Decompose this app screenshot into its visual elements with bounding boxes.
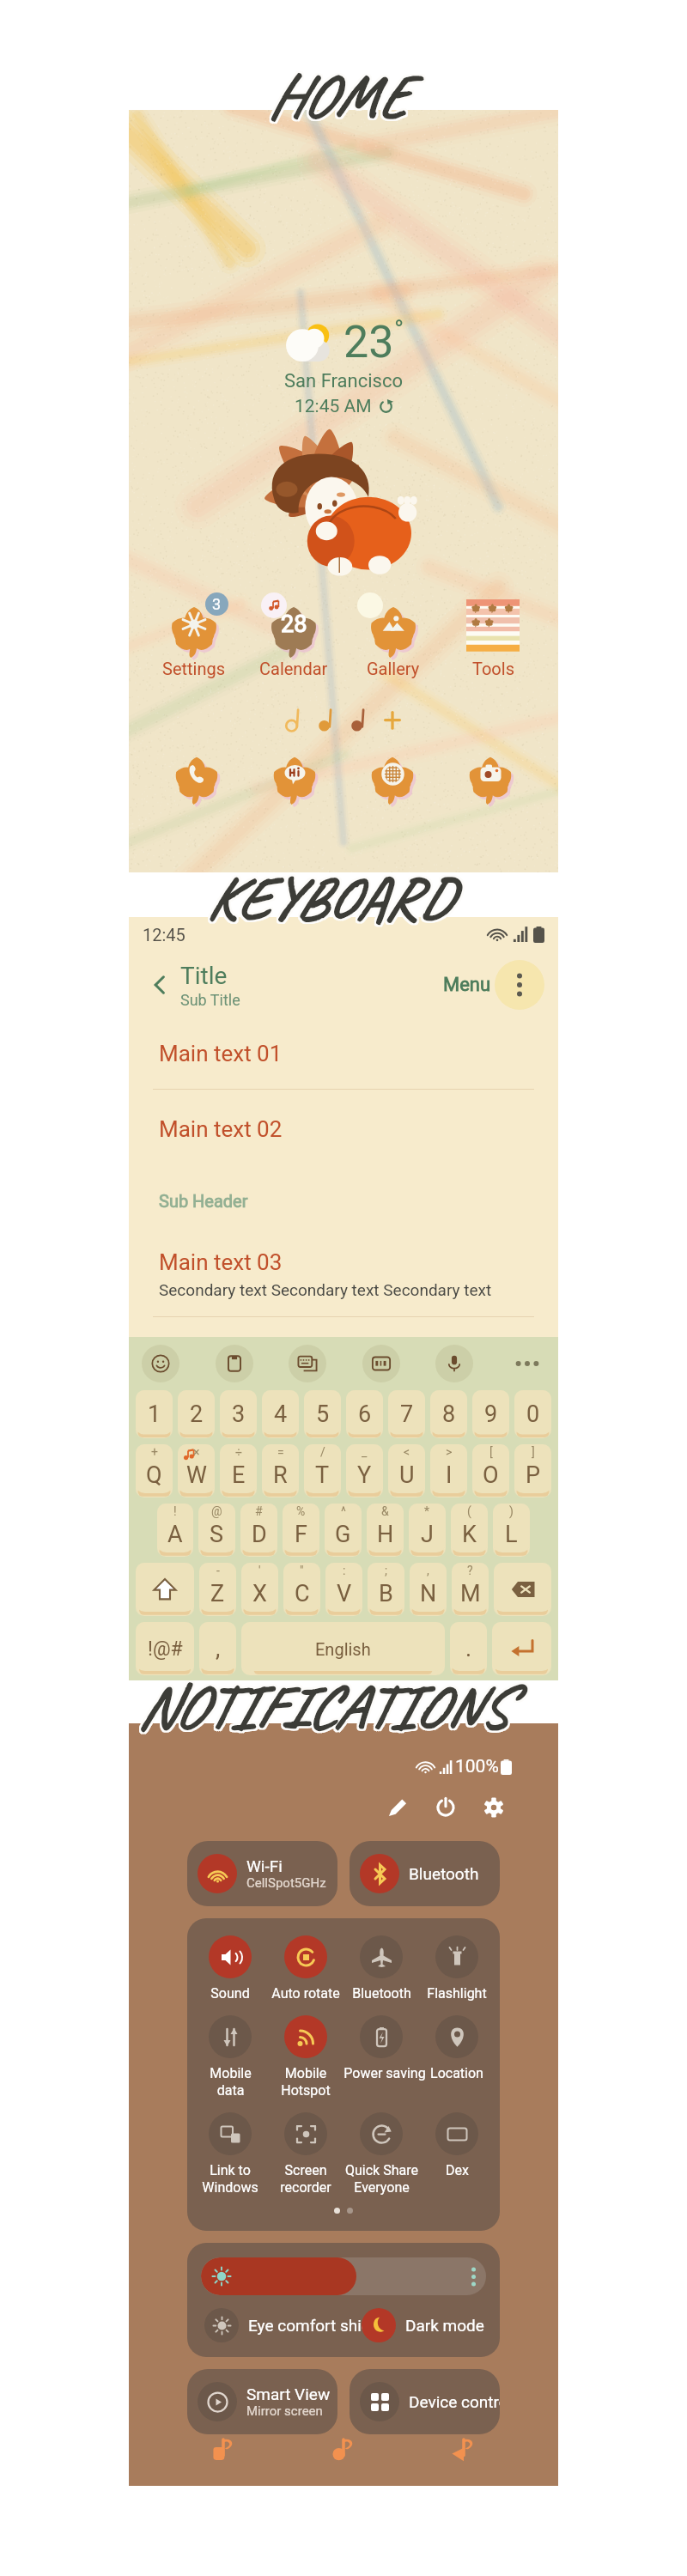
button[interactable]: 6 xyxy=(346,1390,383,1438)
button[interactable]: Recents xyxy=(198,2434,249,2464)
button[interactable]: . xyxy=(450,1622,487,1675)
button[interactable]: Main text 04 xyxy=(129,1317,558,1386)
button[interactable]: Main text 03 xyxy=(129,1232,558,1316)
button[interactable]: Browser xyxy=(357,747,428,811)
button[interactable]: V xyxy=(325,1563,362,1616)
button[interactable]: Bluetooth xyxy=(350,1841,500,1906)
button[interactable]: Smart View xyxy=(187,2369,337,2434)
button[interactable]: More options xyxy=(495,960,544,1010)
button[interactable]: Power xyxy=(431,1793,460,1822)
button[interactable]: 1 xyxy=(136,1390,173,1438)
button[interactable]: 3 xyxy=(153,592,235,678)
button[interactable]: Wi-Fi xyxy=(187,1841,337,1906)
button[interactable]: Home xyxy=(318,2434,369,2464)
button[interactable]: M xyxy=(452,1563,489,1616)
staticText: NOTIFICATIONS xyxy=(136,1668,506,1743)
button[interactable]: G xyxy=(325,1504,362,1557)
button[interactable]: Enter xyxy=(492,1622,551,1675)
button[interactable]: 8 xyxy=(430,1390,467,1438)
button[interactable]: Tools xyxy=(452,592,534,678)
button[interactable]: , xyxy=(199,1622,236,1675)
button[interactable]: D xyxy=(240,1504,277,1557)
button[interactable]: P xyxy=(514,1444,551,1498)
button[interactable]: Main text 02 xyxy=(129,1090,558,1169)
staticText: G xyxy=(335,1521,351,1548)
button[interactable]: English xyxy=(241,1622,445,1675)
staticText: HOME xyxy=(266,58,405,134)
button[interactable]: Screen recorder xyxy=(268,2112,343,2196)
button[interactable]: Z xyxy=(199,1563,236,1616)
button[interactable]: Mobile Hotspot xyxy=(268,2015,343,2099)
staticText: * xyxy=(424,1504,430,1518)
button[interactable]: Flashlight xyxy=(419,1935,495,2002)
button[interactable]: Settings xyxy=(479,1793,508,1822)
button[interactable]: Brightness options xyxy=(460,2257,486,2295)
button[interactable]: Clipboard xyxy=(216,1345,253,1382)
button[interactable]: Device control xyxy=(350,2369,500,2434)
staticText: E xyxy=(232,1461,246,1489)
button[interactable]: 0 xyxy=(514,1390,551,1438)
button[interactable]: Power saving xyxy=(343,2015,419,2081)
button[interactable]: Camera xyxy=(455,747,526,811)
button[interactable]: H xyxy=(367,1504,404,1557)
button[interactable]: Bluetooth xyxy=(343,1935,419,2002)
button[interactable]: S xyxy=(198,1504,235,1557)
button[interactable]: X xyxy=(241,1563,278,1616)
button[interactable]: Edit xyxy=(383,1793,412,1822)
button[interactable]: Quick Share Everyone xyxy=(343,2112,419,2196)
button[interactable]: A xyxy=(157,1504,193,1557)
button[interactable]: 7 xyxy=(388,1390,425,1438)
button[interactable]: 2 xyxy=(178,1390,215,1438)
button[interactable]: Location xyxy=(419,2015,495,2081)
button[interactable]: GIF xyxy=(362,1345,400,1382)
button[interactable]: C xyxy=(283,1563,320,1616)
button[interactable]: Link to Windows xyxy=(192,2112,268,2196)
button[interactable]: Phone xyxy=(161,747,232,811)
button[interactable]: Dark mode xyxy=(362,2308,486,2342)
button[interactable]: Menu xyxy=(440,974,495,996)
button[interactable]: R xyxy=(262,1444,299,1498)
button[interactable]: Back xyxy=(438,2434,489,2464)
staticText: D xyxy=(252,1521,267,1548)
button[interactable]: Q xyxy=(136,1444,173,1498)
button[interactable]: More xyxy=(509,1346,545,1382)
button[interactable]: Y xyxy=(346,1444,383,1498)
button[interactable]: Backspace xyxy=(494,1563,551,1616)
staticText: + xyxy=(151,1445,158,1459)
button[interactable]: Dex xyxy=(419,2112,495,2178)
button[interactable]: Messages xyxy=(259,747,330,811)
button[interactable]: Back xyxy=(139,964,180,1005)
button[interactable]: O xyxy=(472,1444,509,1498)
button[interactable]: Mobile data xyxy=(192,2015,268,2099)
staticText: NOTIFICATIONS xyxy=(137,1671,508,1747)
button[interactable]: E xyxy=(220,1444,257,1498)
button[interactable]: N xyxy=(410,1563,447,1616)
button[interactable]: Sound xyxy=(192,1935,268,2002)
button[interactable]: Brightness options xyxy=(201,2257,486,2295)
button[interactable]: !@# xyxy=(136,1622,194,1675)
button[interactable]: 5 xyxy=(304,1390,341,1438)
button[interactable]: I xyxy=(430,1444,467,1498)
button[interactable]: U xyxy=(388,1444,425,1498)
button[interactable]: 9 xyxy=(472,1390,509,1438)
button[interactable]: Gallery xyxy=(352,592,435,678)
staticText: 9 xyxy=(484,1400,498,1428)
button[interactable]: 28 xyxy=(252,592,335,678)
button[interactable]: Auto rotate xyxy=(268,1935,343,2002)
button[interactable]: 4 xyxy=(262,1390,299,1438)
button[interactable]: K xyxy=(451,1504,488,1557)
button[interactable]: W xyxy=(178,1444,215,1498)
button[interactable]: 3 xyxy=(220,1390,257,1438)
button[interactable]: Main text 01 xyxy=(129,1018,558,1089)
button[interactable]: F xyxy=(283,1504,319,1557)
button[interactable]: Emoji xyxy=(142,1345,179,1382)
button[interactable]: Voice input xyxy=(435,1345,473,1382)
button[interactable]: L xyxy=(493,1504,530,1557)
button[interactable]: T xyxy=(304,1444,341,1498)
button[interactable]: Translate xyxy=(289,1345,326,1382)
button[interactable]: Eye comfort shield xyxy=(201,2308,362,2342)
button[interactable]: B xyxy=(368,1563,404,1616)
button[interactable]: J xyxy=(409,1504,446,1557)
button[interactable]: Shift xyxy=(136,1563,194,1616)
staticText: HOME xyxy=(268,57,407,132)
